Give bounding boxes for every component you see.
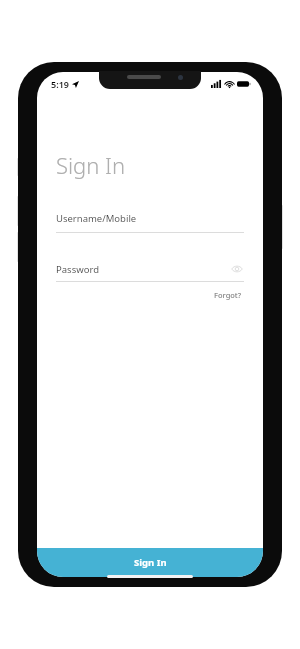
- staticText: Password: [56, 263, 99, 276]
- staticText: Sign In: [56, 150, 126, 180]
- button[interactable]: Password: [56, 262, 244, 282]
- button[interactable]: Sign In: [37, 548, 263, 577]
- staticText: Sign In: [134, 556, 167, 569]
- button[interactable]: Username/Mobile: [56, 212, 244, 233]
- staticText: 5:19: [51, 78, 69, 90]
- staticText: Forgot?: [214, 290, 242, 300]
- button[interactable]: Forgot?: [212, 288, 244, 302]
- staticText: Username/Mobile: [56, 212, 137, 225]
- button[interactable]: Show password: [230, 262, 244, 276]
